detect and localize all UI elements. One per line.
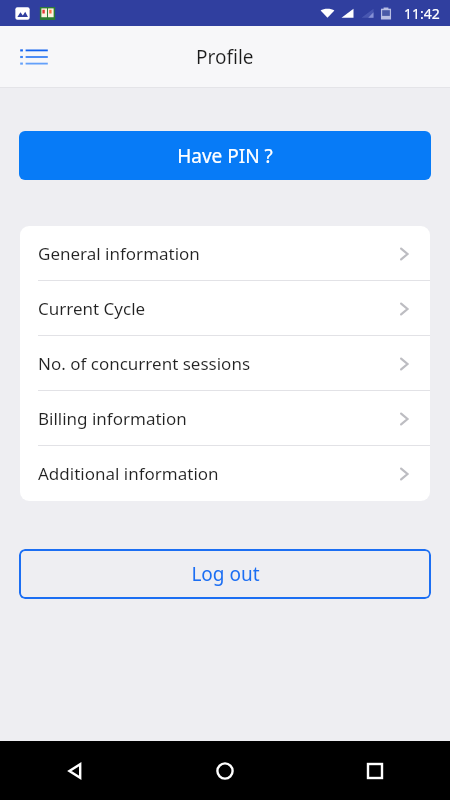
button[interactable]: Menu bbox=[10, 33, 58, 81]
staticText: Profile bbox=[196, 44, 254, 70]
staticText: Log out bbox=[191, 561, 260, 587]
staticText: 11:42 bbox=[404, 4, 440, 23]
staticText: No. of concurrent sessions bbox=[38, 352, 396, 375]
button[interactable]: Billing information bbox=[20, 391, 430, 446]
button[interactable]: Back bbox=[0, 741, 150, 800]
button[interactable]: General information bbox=[20, 226, 430, 281]
staticText: Additional information bbox=[38, 462, 396, 485]
button[interactable]: Home bbox=[150, 741, 300, 800]
button[interactable]: Have PIN ? bbox=[19, 131, 431, 180]
staticText: Have PIN ? bbox=[177, 143, 273, 169]
button[interactable]: No. of concurrent sessions bbox=[20, 336, 430, 391]
button[interactable]: Current Cycle bbox=[20, 281, 430, 336]
staticText: Billing information bbox=[38, 407, 396, 430]
staticText: Current Cycle bbox=[38, 297, 396, 320]
button[interactable]: Recents bbox=[300, 741, 450, 800]
button[interactable]: Log out bbox=[19, 549, 431, 599]
button[interactable]: Additional information bbox=[20, 446, 430, 501]
staticText: General information bbox=[38, 242, 396, 265]
